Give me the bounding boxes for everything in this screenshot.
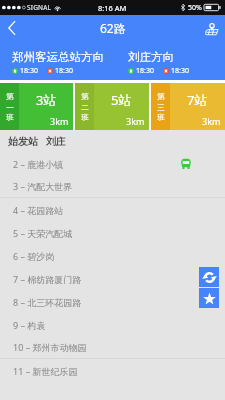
button[interactable]: 第一班 bbox=[0, 83, 73, 130]
button[interactable]: 刘庄方向 bbox=[112, 41, 225, 80]
staticText: SIGNAL bbox=[27, 3, 52, 12]
staticText: 62路 bbox=[100, 20, 126, 36]
staticText: 第三班 bbox=[157, 92, 165, 122]
staticText: 郑州客运总站方向 bbox=[12, 50, 104, 64]
staticText: 2 – 鹿港小镇 bbox=[13, 158, 64, 170]
staticText: 18:30 bbox=[20, 66, 38, 76]
button[interactable]: 2 – 鹿港小镇 bbox=[0, 152, 225, 175]
staticText: 3km bbox=[202, 115, 221, 127]
staticText: 始发站 刘庄 bbox=[8, 134, 66, 148]
button[interactable]: 10 – 郑州市动物园 bbox=[0, 336, 225, 358]
button[interactable]: 第三班 bbox=[151, 83, 225, 130]
staticText: 3 – 汽配大世界 bbox=[13, 180, 73, 192]
button[interactable]: 9 – 杓袁 bbox=[0, 313, 225, 336]
staticText: 50% bbox=[188, 3, 202, 13]
staticText: 刘庄方向 bbox=[128, 50, 174, 64]
staticText: 18:30 bbox=[136, 66, 154, 76]
staticText: 第二班 bbox=[81, 92, 89, 122]
staticText: 3km bbox=[126, 115, 145, 127]
staticText: 18:30 bbox=[55, 66, 73, 76]
staticText: 6 – 碧沙岗 bbox=[13, 250, 55, 262]
staticText: 3站 bbox=[36, 91, 57, 109]
staticText: 10 – 郑州市动物园 bbox=[13, 341, 87, 353]
button[interactable]: 11 – 新世纪乐园 bbox=[0, 359, 225, 382]
staticText: 9 – 杓袁 bbox=[13, 319, 46, 331]
button[interactable]: 8 – 北三环花园路 bbox=[0, 290, 225, 313]
staticText: 8:16 AM bbox=[98, 3, 127, 13]
button[interactable]: 3 – 汽配大世界 bbox=[0, 175, 225, 197]
staticText: 5站 bbox=[111, 91, 132, 109]
staticText: 3km bbox=[50, 115, 69, 127]
staticText: 11 – 新世纪乐园 bbox=[13, 365, 78, 377]
button[interactable]: 5 – 天荣汽配城 bbox=[0, 221, 225, 244]
staticText: 第一班 bbox=[6, 92, 14, 122]
button[interactable]: Back bbox=[0, 15, 22, 41]
staticText: 7 – 棉纺路厦门路 bbox=[13, 273, 82, 285]
staticText: 4 – 花园路站 bbox=[13, 204, 64, 216]
staticText: 8 – 北三环花园路 bbox=[13, 296, 82, 308]
button[interactable]: 6 – 碧沙岗 bbox=[0, 244, 225, 267]
button[interactable]: 4 – 花园路站 bbox=[0, 198, 225, 221]
button[interactable]: 第二班 bbox=[75, 83, 149, 130]
button[interactable]: Favorite bbox=[199, 288, 219, 308]
button[interactable]: Map bbox=[199, 15, 225, 41]
button[interactable]: Switch direction bbox=[199, 267, 219, 287]
staticText: 7站 bbox=[187, 91, 208, 109]
staticText: 18:30 bbox=[171, 66, 189, 76]
staticText: 5 – 天荣汽配城 bbox=[13, 227, 73, 239]
button[interactable]: 7 – 棉纺路厦门路 bbox=[0, 267, 225, 290]
button[interactable]: 郑州客运总站方向 bbox=[0, 41, 112, 80]
